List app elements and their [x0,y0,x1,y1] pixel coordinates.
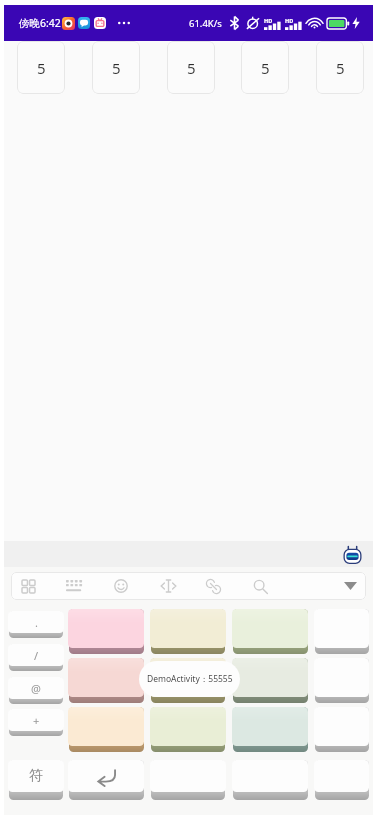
staticText: 5 [261,58,270,78]
staticText: 符 [29,767,43,785]
button[interactable]: Symbols [14,572,42,600]
staticText: HD [264,17,273,24]
staticText: 5 [112,58,121,78]
staticText: 5 [37,58,46,78]
button[interactable]: Key [150,658,226,703]
button[interactable]: + [8,709,64,736]
button[interactable]: Key [150,707,226,752]
staticText: + [33,713,40,728]
button[interactable]: Key [232,658,308,703]
button[interactable]: Key [232,760,308,800]
button[interactable]: 5 [17,41,65,94]
button[interactable]: Key [150,760,226,800]
button[interactable]: Key [314,658,369,703]
button[interactable]: Key [232,609,308,654]
button[interactable]: Search [246,572,274,600]
button[interactable]: Key [314,707,369,752]
button[interactable]: Key [150,609,226,654]
button[interactable]: Emoji [107,572,135,600]
staticText: 61.4K/s [189,17,222,30]
staticText: 傍晚6:42 [19,16,61,30]
staticText: HD [285,17,294,24]
button[interactable]: 5 [316,41,364,94]
button[interactable]: Hide keyboard [336,572,364,600]
button[interactable]: 5 [241,41,289,94]
staticText: 5 [187,58,196,78]
button[interactable]: Key [314,760,369,800]
button[interactable]: Move cursor [154,572,182,600]
button[interactable]: Key [232,707,308,752]
staticText: 5 [336,58,345,78]
button[interactable]: . [8,611,64,638]
staticText: DemoActivity：55555 [147,673,233,685]
button[interactable]: 5 [167,41,215,94]
button[interactable]: Key [314,609,369,654]
button[interactable]: / [8,644,64,671]
button[interactable]: Key [68,707,144,752]
button[interactable]: Key [68,609,144,654]
button[interactable]: 5 [92,41,140,94]
button[interactable]: Clipboard [199,572,227,600]
staticText: @ [31,681,41,696]
button[interactable]: @ [8,677,64,704]
staticText: / [34,648,39,663]
button[interactable]: 符 [8,760,64,800]
button[interactable]: Assistant [343,544,362,565]
button[interactable]: Keyboard layout [60,572,88,600]
staticText: . [35,615,38,630]
button[interactable]: Key [68,760,144,800]
button[interactable]: Key [68,658,144,703]
